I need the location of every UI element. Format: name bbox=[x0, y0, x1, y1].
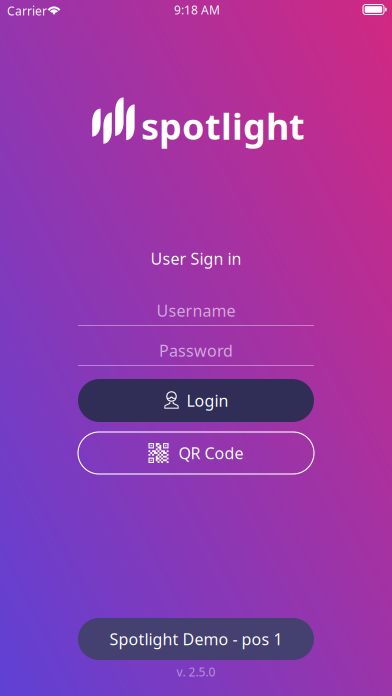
staticText: 9:18 AM bbox=[174, 2, 220, 18]
staticText: QR Code bbox=[178, 442, 243, 464]
staticText: Username bbox=[156, 300, 235, 321]
staticText: User Sign in bbox=[150, 248, 241, 269]
staticText: Carrier bbox=[7, 3, 47, 19]
staticText: Login bbox=[186, 390, 228, 411]
button[interactable]: Login bbox=[78, 379, 314, 422]
staticText: spotlight bbox=[141, 102, 305, 150]
button[interactable]: QR Code bbox=[78, 432, 314, 474]
staticText: v. 2.5.0 bbox=[176, 664, 215, 680]
button[interactable]: Spotlight Demo - pos 1 bbox=[78, 618, 314, 660]
staticText: Password bbox=[159, 340, 233, 361]
staticText: Spotlight Demo - pos 1 bbox=[109, 628, 282, 650]
